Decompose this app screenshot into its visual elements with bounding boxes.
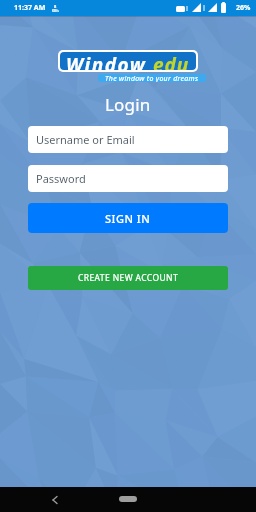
staticText: 11:37 AM (14, 3, 46, 13)
staticText: edu (153, 52, 190, 70)
staticText: The window to your dreams (105, 74, 199, 82)
staticText: Password (36, 171, 86, 186)
staticText: Username or Email (36, 132, 135, 147)
staticText: SIGN IN (105, 211, 151, 226)
button[interactable]: Password (28, 165, 228, 192)
button[interactable] (45, 490, 65, 510)
button[interactable]: SIGN IN (28, 203, 228, 233)
button[interactable]: CREATE NEW ACCOUNT (28, 266, 228, 290)
staticText: 8 (54, 4, 57, 9)
button[interactable] (119, 496, 137, 502)
staticText: CREATE NEW ACCOUNT (78, 272, 179, 284)
staticText: 26% (236, 3, 251, 13)
staticText: Window (66, 52, 147, 70)
staticText: KB/s (52, 9, 59, 13)
button[interactable]: Username or Email (28, 126, 228, 153)
staticText: Login (105, 93, 151, 116)
